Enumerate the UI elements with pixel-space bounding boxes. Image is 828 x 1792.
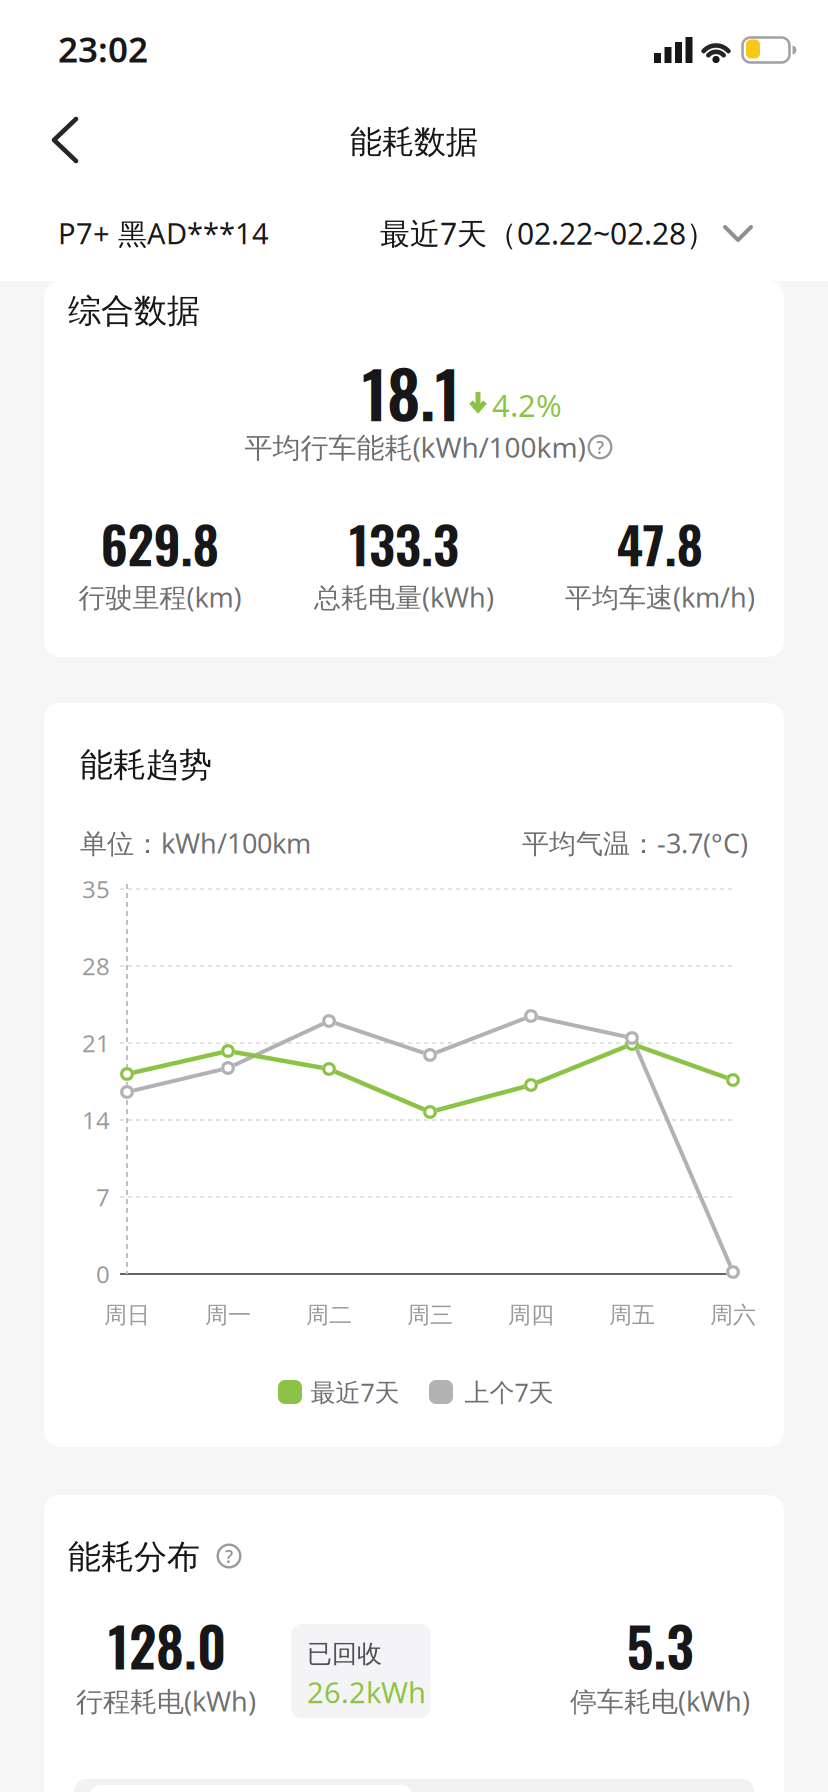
staticText: 47.8 (616, 505, 703, 581)
staticText: 18.1 (362, 344, 460, 440)
staticText: 35 (82, 873, 110, 905)
staticText: 已回收 (307, 1639, 382, 1669)
staticText: 行驶里程(km) (78, 579, 241, 615)
staticText: 周日 (104, 1301, 150, 1329)
button[interactable]: P7+ 黑AD***14 (58, 214, 378, 252)
staticText: 128.0 (108, 1605, 226, 1685)
staticText: 周五 (609, 1301, 655, 1329)
staticText: 能耗数据 (350, 122, 478, 162)
staticText: 行程耗电(kWh) (76, 1683, 256, 1719)
staticText: 629.8 (100, 505, 219, 581)
staticText: ? (225, 1544, 233, 1568)
staticText: 能耗趋势 (80, 745, 212, 785)
staticText: 平均车速(km/h) (565, 579, 755, 615)
staticText: 26.2kWh (307, 1673, 426, 1711)
staticText: 7 (96, 1181, 110, 1213)
staticText: 周二 (306, 1301, 352, 1329)
staticText: 平均气温：-3.7(°C) (522, 825, 748, 861)
staticText: 最近7天（02.22~02.28） (380, 213, 716, 253)
staticText: ? (596, 435, 604, 459)
staticText: P7+ 黑AD***14 (58, 214, 269, 252)
button[interactable]: 返回 (43, 112, 87, 168)
button[interactable]: 图表切换 (74, 1779, 754, 1792)
staticText: 总耗电量(kWh) (314, 579, 494, 615)
staticText: 5.3 (626, 1605, 693, 1685)
staticText: 0 (96, 1258, 110, 1290)
staticText: 平均行车能耗(kWh/100km) (244, 428, 585, 466)
button[interactable]: 帮助 (216, 1543, 242, 1569)
staticText: 周四 (508, 1301, 554, 1329)
staticText: 28 (82, 950, 110, 982)
button[interactable]: 最近7天（02.22~02.28） (380, 213, 752, 253)
staticText: 14 (82, 1104, 110, 1136)
staticText: 上个7天 (464, 1375, 553, 1409)
staticText: 能耗分布 (68, 1537, 200, 1577)
staticText: 综合数据 (68, 291, 200, 331)
staticText: 最近7天 (310, 1375, 399, 1409)
staticText: 单位：kWh/100km (80, 825, 311, 861)
staticText: 4.2% (492, 384, 562, 426)
staticText: 停车耗电(kWh) (570, 1683, 750, 1719)
staticText: 23:02 (58, 26, 148, 72)
staticText: 周一 (205, 1301, 251, 1329)
button[interactable]: 帮助 (587, 434, 613, 460)
staticText: 周六 (710, 1301, 756, 1329)
staticText: 21 (82, 1027, 110, 1059)
staticText: 周三 (407, 1301, 453, 1329)
staticText: 133.3 (349, 505, 459, 581)
